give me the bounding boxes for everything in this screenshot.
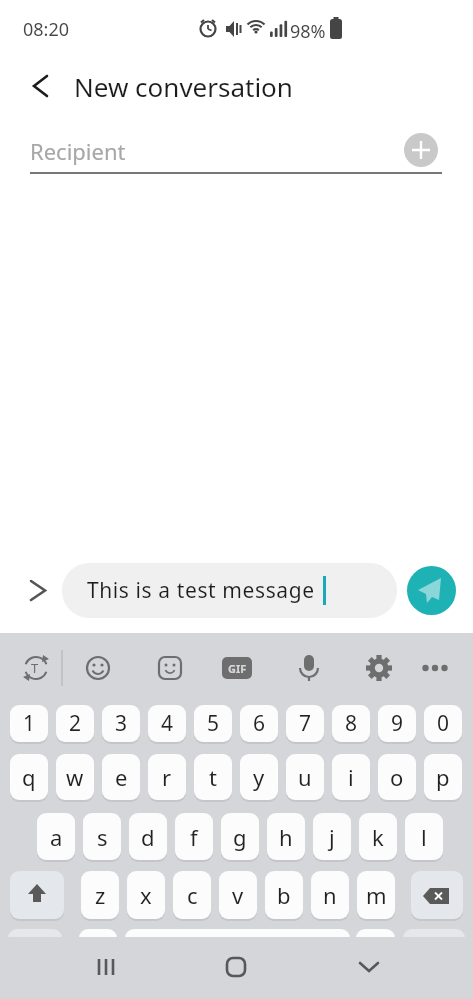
- button[interactable]: [18, 570, 58, 610]
- button[interactable]: x: [127, 871, 165, 919]
- staticText: z: [95, 880, 106, 910]
- button[interactable]: e: [102, 754, 140, 800]
- staticText: w: [66, 762, 84, 792]
- staticText: 8: [345, 709, 358, 738]
- button[interactable]: 1: [10, 705, 48, 742]
- button[interactable]: h: [267, 813, 305, 860]
- button[interactable]: [10, 871, 64, 919]
- button[interactable]: y: [240, 754, 278, 800]
- staticText: t: [209, 762, 217, 792]
- button[interactable]: f: [175, 813, 213, 860]
- staticText: 4: [161, 709, 174, 738]
- staticText: h: [279, 822, 293, 852]
- button[interactable]: i: [332, 754, 370, 800]
- button[interactable]: 6: [240, 705, 278, 742]
- staticText: n: [323, 880, 337, 910]
- button[interactable]: [407, 566, 456, 615]
- button[interactable]: [78, 648, 118, 688]
- staticText: i: [348, 762, 354, 792]
- staticText: l: [421, 822, 427, 852]
- staticText: 0: [437, 709, 450, 738]
- staticText: 98%: [290, 19, 326, 44]
- button[interactable]: 0: [424, 705, 462, 742]
- staticText: s: [97, 822, 108, 852]
- button[interactable]: k: [359, 813, 397, 860]
- button[interactable]: s: [83, 813, 121, 860]
- staticText: r: [162, 762, 172, 792]
- button[interactable]: This is a test message: [62, 563, 397, 618]
- button[interactable]: 3: [102, 705, 140, 742]
- button[interactable]: l: [405, 813, 443, 860]
- staticText: This is a test message: [87, 576, 315, 605]
- button[interactable]: [404, 133, 438, 167]
- staticText: b: [277, 880, 291, 910]
- button[interactable]: [24, 66, 64, 106]
- button[interactable]: [289, 648, 329, 688]
- staticText: f: [190, 822, 198, 852]
- staticText: m: [366, 880, 387, 910]
- staticText: x: [140, 880, 152, 910]
- button[interactable]: [349, 947, 389, 987]
- button[interactable]: 8: [332, 705, 370, 742]
- staticText: GIF: [228, 661, 247, 676]
- staticText: j: [329, 822, 335, 852]
- staticText: d: [141, 822, 155, 852]
- staticText: 1: [23, 709, 36, 738]
- button[interactable]: [217, 648, 257, 688]
- button[interactable]: [403, 929, 465, 959]
- button[interactable]: o: [378, 754, 416, 800]
- staticText: o: [390, 762, 404, 792]
- button[interactable]: n: [311, 871, 349, 919]
- button[interactable]: t: [194, 754, 232, 800]
- staticText: 08:20: [23, 17, 70, 42]
- staticText: p: [436, 762, 450, 792]
- staticText: Recipient: [30, 136, 126, 166]
- button[interactable]: z: [81, 871, 119, 919]
- staticText: 9: [391, 709, 404, 738]
- button[interactable]: c: [173, 871, 211, 919]
- staticText: q: [22, 762, 36, 792]
- staticText: y: [253, 762, 265, 792]
- button[interactable]: 5: [194, 705, 232, 742]
- staticText: u: [298, 762, 312, 792]
- button[interactable]: 9: [378, 705, 416, 742]
- button[interactable]: m: [357, 871, 395, 919]
- button[interactable]: 7: [286, 705, 324, 742]
- button[interactable]: [411, 871, 463, 919]
- button[interactable]: g: [221, 813, 259, 860]
- button[interactable]: b: [265, 871, 303, 919]
- button[interactable]: [16, 648, 56, 688]
- button[interactable]: [86, 947, 126, 987]
- button[interactable]: a: [37, 813, 75, 860]
- staticText: 2: [69, 709, 82, 738]
- button[interactable]: [415, 648, 455, 688]
- staticText: 5: [207, 709, 220, 738]
- button[interactable]: [8, 929, 62, 959]
- staticText: a: [50, 822, 63, 852]
- staticText: 6: [253, 709, 266, 738]
- button[interactable]: r: [148, 754, 186, 800]
- button[interactable]: q: [10, 754, 48, 800]
- staticText: New conversation: [74, 69, 293, 104]
- button[interactable]: [150, 648, 190, 688]
- staticText: 7: [299, 709, 312, 738]
- button[interactable]: 4: [148, 705, 186, 742]
- staticText: v: [232, 880, 244, 910]
- button[interactable]: d: [129, 813, 167, 860]
- button[interactable]: w: [56, 754, 94, 800]
- button[interactable]: u: [286, 754, 324, 800]
- button[interactable]: [356, 929, 395, 959]
- staticText: k: [372, 822, 384, 852]
- button[interactable]: [216, 947, 256, 987]
- staticText: T: [31, 659, 39, 677]
- button[interactable]: v: [219, 871, 257, 919]
- button[interactable]: [79, 929, 117, 959]
- button[interactable]: 2: [56, 705, 94, 742]
- staticText: g: [233, 822, 247, 852]
- staticText: 3: [115, 709, 128, 738]
- button[interactable]: p: [424, 754, 462, 800]
- button[interactable]: [359, 648, 399, 688]
- staticText: e: [115, 762, 128, 792]
- button[interactable]: j: [313, 813, 351, 860]
- button[interactable]: [125, 929, 350, 959]
